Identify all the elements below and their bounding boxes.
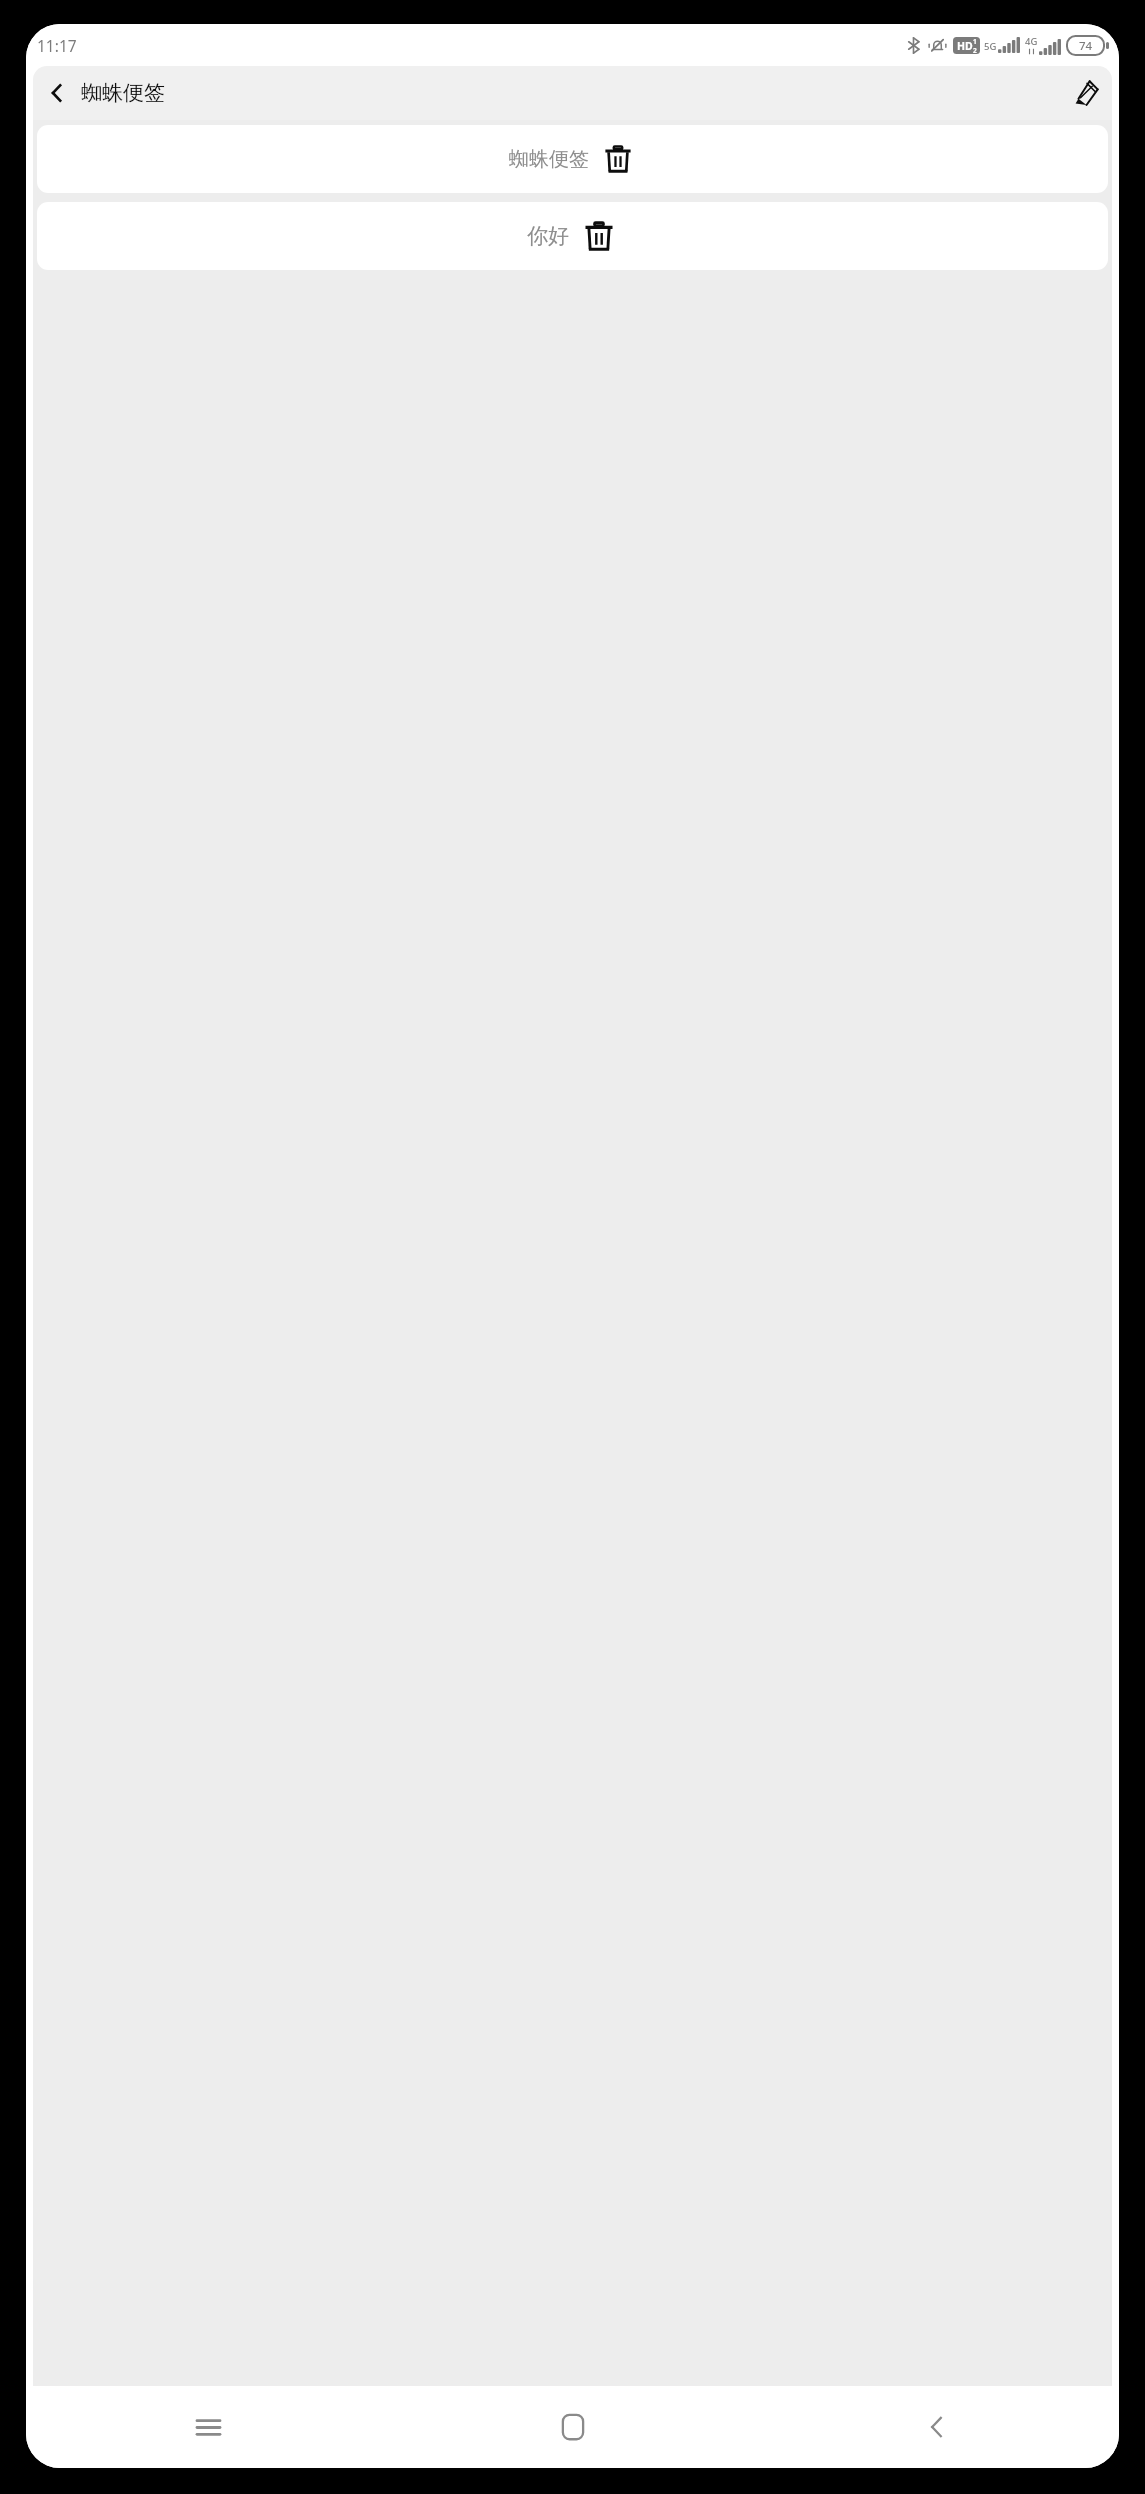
staticText: 蜘蛛便签 xyxy=(81,80,165,106)
button[interactable]: Recents xyxy=(26,2386,391,2468)
button[interactable]: Home xyxy=(391,2386,755,2468)
button[interactable]: Delete xyxy=(580,217,618,255)
staticText: 74 xyxy=(1079,38,1093,54)
button[interactable]: Delete xyxy=(600,141,636,177)
staticText: 5G xyxy=(984,40,997,53)
button[interactable]: 你好 xyxy=(37,202,1108,270)
staticText: 4G xyxy=(1025,35,1038,48)
staticText: 11:17 xyxy=(37,35,77,56)
staticText: 蜘蛛便签 xyxy=(509,147,589,172)
staticText: HD xyxy=(957,39,973,53)
button[interactable]: Edit xyxy=(1060,67,1112,119)
button[interactable]: Back xyxy=(755,2386,1119,2468)
staticText: 你好 xyxy=(527,223,569,249)
button[interactable]: 蜘蛛便签 xyxy=(37,125,1108,193)
staticText: 1 xyxy=(973,37,977,46)
staticText: 2 xyxy=(973,46,977,54)
button[interactable]: Back xyxy=(33,69,81,117)
